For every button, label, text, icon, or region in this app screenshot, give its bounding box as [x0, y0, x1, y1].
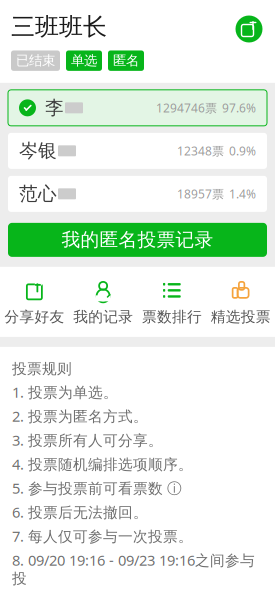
staticText: 97.6%	[222, 100, 256, 116]
button[interactable]: 李	[0, 90, 275, 126]
staticText: 李	[45, 96, 64, 119]
staticText: 1. 投票为单选。	[12, 382, 118, 402]
staticText: 0.9%	[229, 143, 256, 159]
staticText: 我的匿名投票记录	[61, 228, 213, 251]
staticText: 12348票	[177, 143, 224, 159]
staticText: 票数排行	[142, 308, 202, 326]
staticText: 7. 每人仅可参与一次投票。	[12, 526, 193, 546]
staticText: 岑银	[19, 139, 57, 162]
staticText: 5. 参与投票前可看票数 ⓘ	[12, 478, 182, 498]
button[interactable]: 精选投票	[206, 278, 275, 328]
staticText: 18957票	[177, 186, 224, 202]
staticText: 精选投票	[211, 308, 271, 326]
staticText: 3. 投票所有人可分享。	[12, 430, 163, 450]
button[interactable]: 我的匿名投票记录	[0, 223, 275, 257]
staticText: 2. 投票为匿名方式。	[12, 406, 148, 426]
staticText: 三班班长	[11, 12, 107, 41]
staticText: 1294746票	[156, 100, 217, 116]
staticText: 1.4%	[229, 186, 256, 202]
staticText: 投票规则	[12, 360, 72, 378]
staticText: 6. 投票后无法撤回。	[12, 502, 148, 522]
staticText: 分享好友	[4, 308, 64, 326]
staticText: 我的记录	[73, 308, 133, 326]
staticText: 单选	[71, 52, 97, 69]
staticText: 范心	[19, 182, 57, 205]
staticText: 已结束	[16, 52, 55, 69]
staticText: 匿名	[113, 52, 139, 69]
button[interactable]: Share	[232, 12, 266, 46]
button[interactable]: 票数排行	[137, 278, 206, 328]
button[interactable]: 范心	[0, 176, 275, 212]
button[interactable]: 岑银	[0, 133, 275, 169]
staticText: 4. 投票随机编排选项顺序。	[12, 454, 193, 474]
staticText: 8. 09/20 19:16 - 09/23 19:16之间参与投	[12, 550, 255, 588]
button[interactable]: 分享好友	[0, 278, 69, 328]
button[interactable]: 我的记录	[69, 278, 138, 328]
